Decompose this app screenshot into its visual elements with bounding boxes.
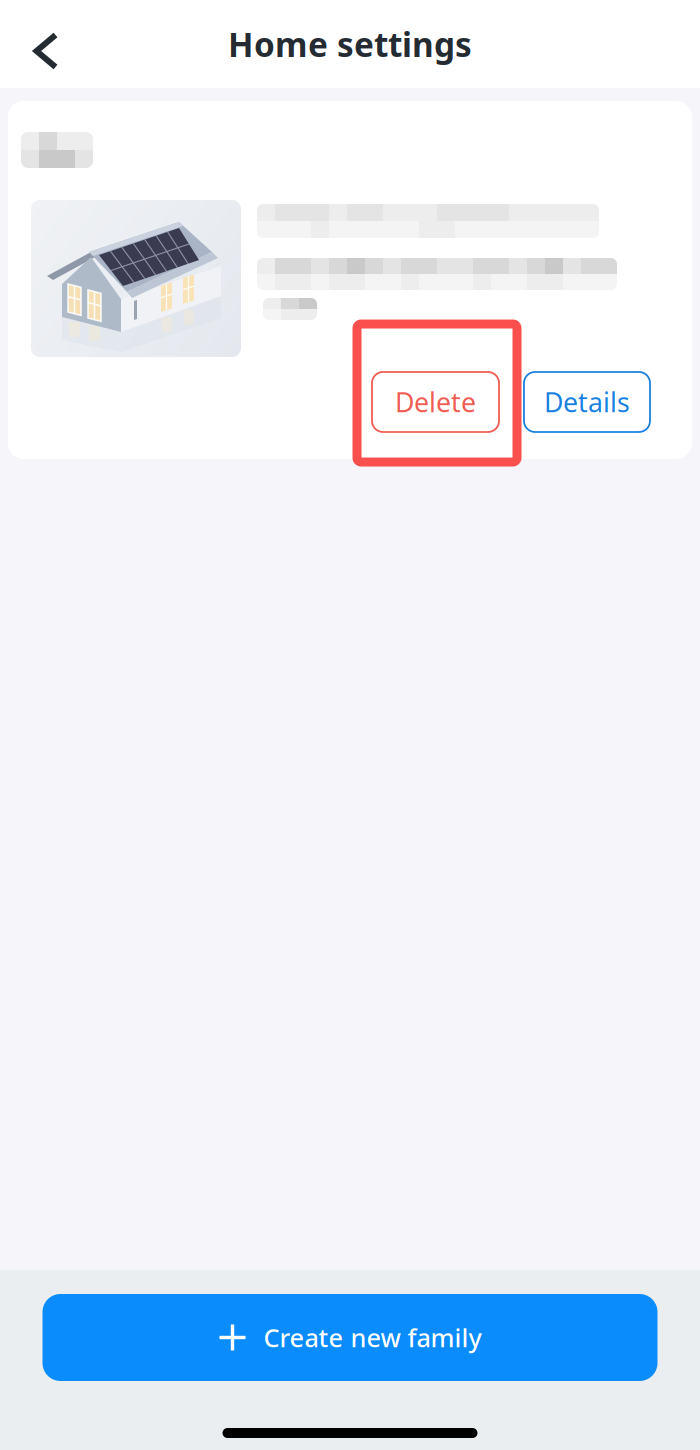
staticText: Home settings: [228, 22, 472, 66]
button[interactable]: Create new family: [42, 1294, 657, 1381]
staticText: Delete: [395, 384, 476, 420]
button[interactable]: Back: [14, 13, 76, 75]
button[interactable]: Delete: [372, 372, 499, 432]
staticText: Create new family: [263, 1321, 481, 1354]
staticText: Details: [544, 384, 630, 420]
button[interactable]: Details: [524, 372, 650, 432]
